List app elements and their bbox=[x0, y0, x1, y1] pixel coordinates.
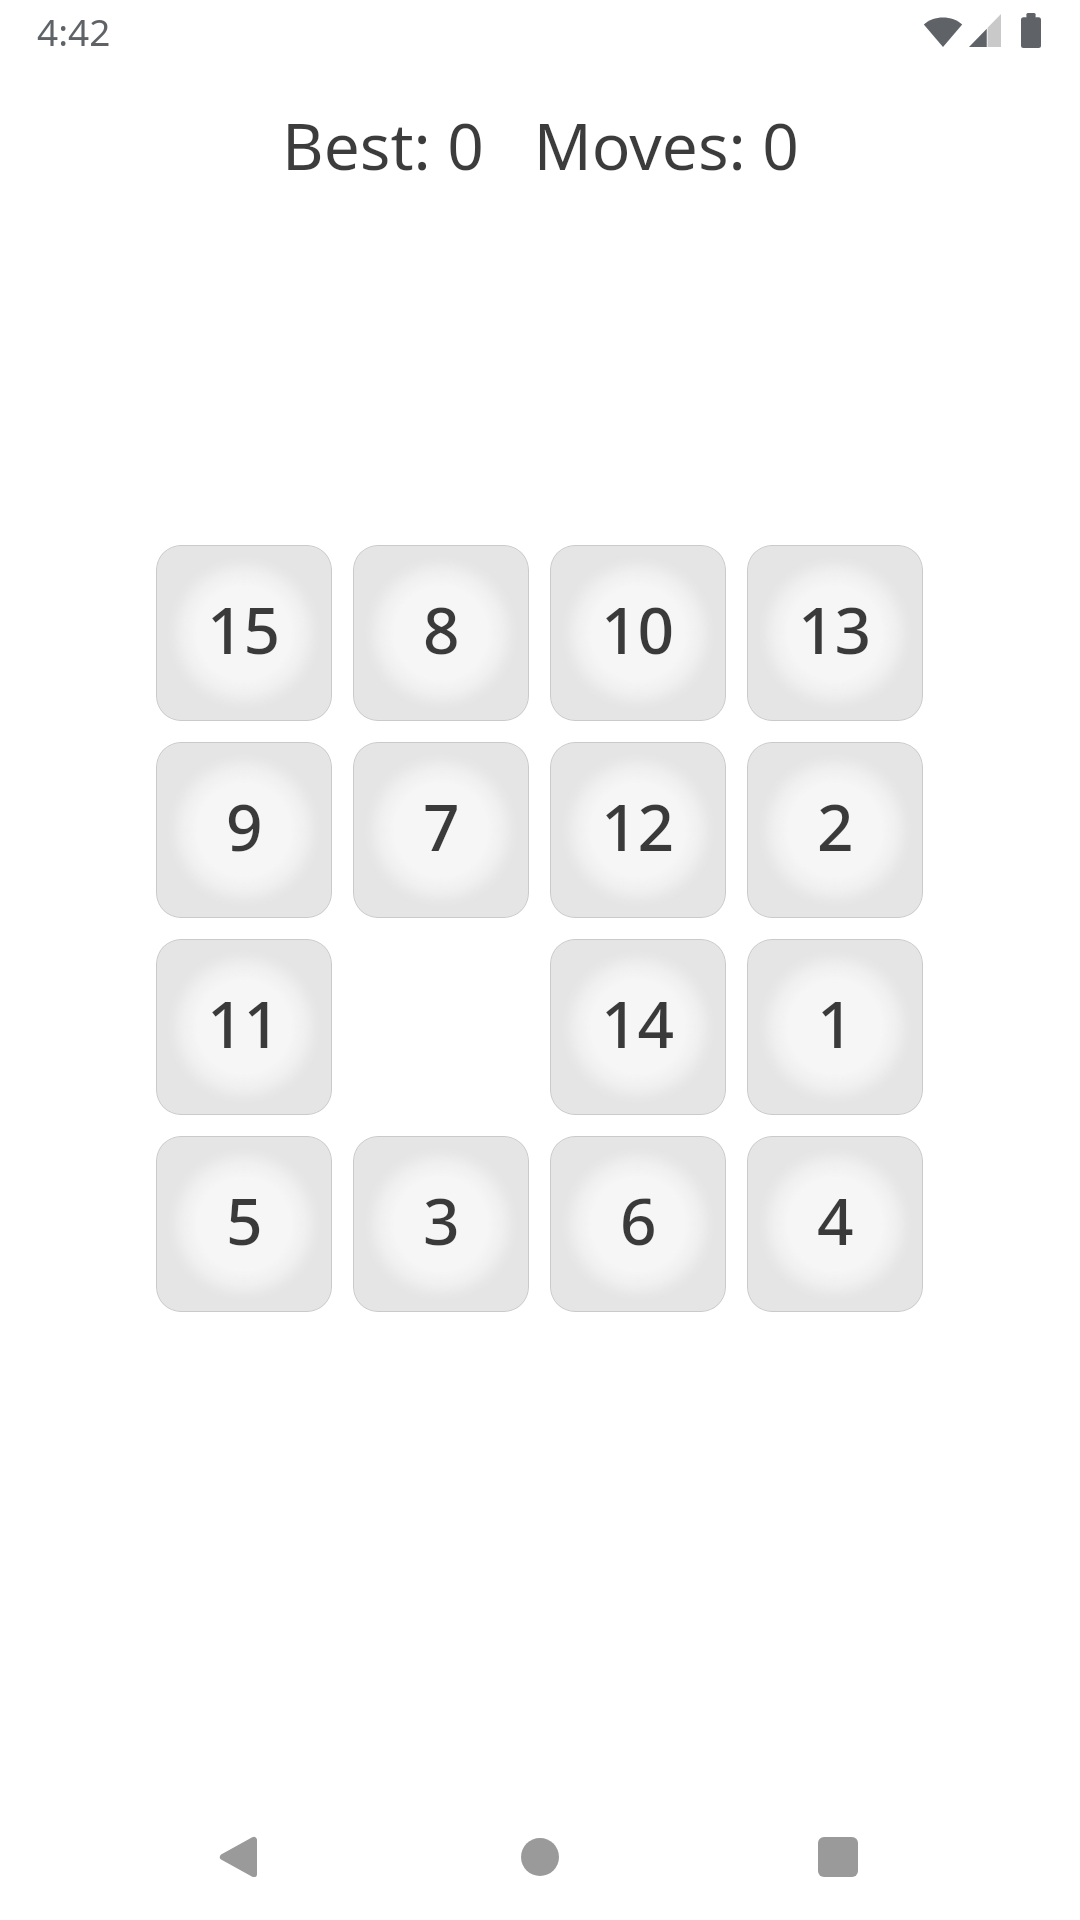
button[interactable]: 13 bbox=[747, 545, 923, 721]
button[interactable]: 10 bbox=[550, 545, 726, 721]
button[interactable]: 14 bbox=[550, 939, 726, 1115]
staticText: 10 bbox=[601, 586, 675, 673]
staticText: 1 bbox=[817, 980, 854, 1067]
staticText: 3 bbox=[423, 1177, 460, 1264]
button[interactable]: 4 bbox=[747, 1136, 923, 1312]
staticText: 2 bbox=[817, 783, 854, 870]
button[interactable]: 15 bbox=[156, 545, 332, 721]
staticText: Best: 0 Moves: 0 bbox=[282, 102, 799, 189]
button[interactable]: 1 bbox=[747, 939, 923, 1115]
button[interactable]: 11 bbox=[156, 939, 332, 1115]
staticText: 14 bbox=[601, 980, 675, 1067]
button[interactable]: 8 bbox=[353, 545, 529, 721]
staticText: 11 bbox=[207, 980, 281, 1067]
staticText: 5 bbox=[226, 1177, 263, 1264]
staticText: 6 bbox=[620, 1177, 657, 1264]
staticText: 12 bbox=[601, 783, 675, 870]
button[interactable]: 7 bbox=[353, 742, 529, 918]
button[interactable]: 5 bbox=[156, 1136, 332, 1312]
button[interactable]: Recent apps bbox=[778, 1797, 898, 1917]
staticText: 7 bbox=[423, 783, 460, 870]
button[interactable]: 3 bbox=[353, 1136, 529, 1312]
staticText: 15 bbox=[207, 586, 281, 673]
staticText: 13 bbox=[798, 586, 872, 673]
button[interactable]: 6 bbox=[550, 1136, 726, 1312]
button[interactable]: Back bbox=[177, 1797, 297, 1917]
staticText: 9 bbox=[226, 783, 263, 870]
staticText: 8 bbox=[423, 586, 460, 673]
button[interactable]: 9 bbox=[156, 742, 332, 918]
button[interactable]: Home bbox=[480, 1797, 600, 1917]
button[interactable]: 12 bbox=[550, 742, 726, 918]
staticText: 4 bbox=[817, 1177, 854, 1264]
button[interactable]: 2 bbox=[747, 742, 923, 918]
staticText: 4:42 bbox=[37, 6, 111, 56]
